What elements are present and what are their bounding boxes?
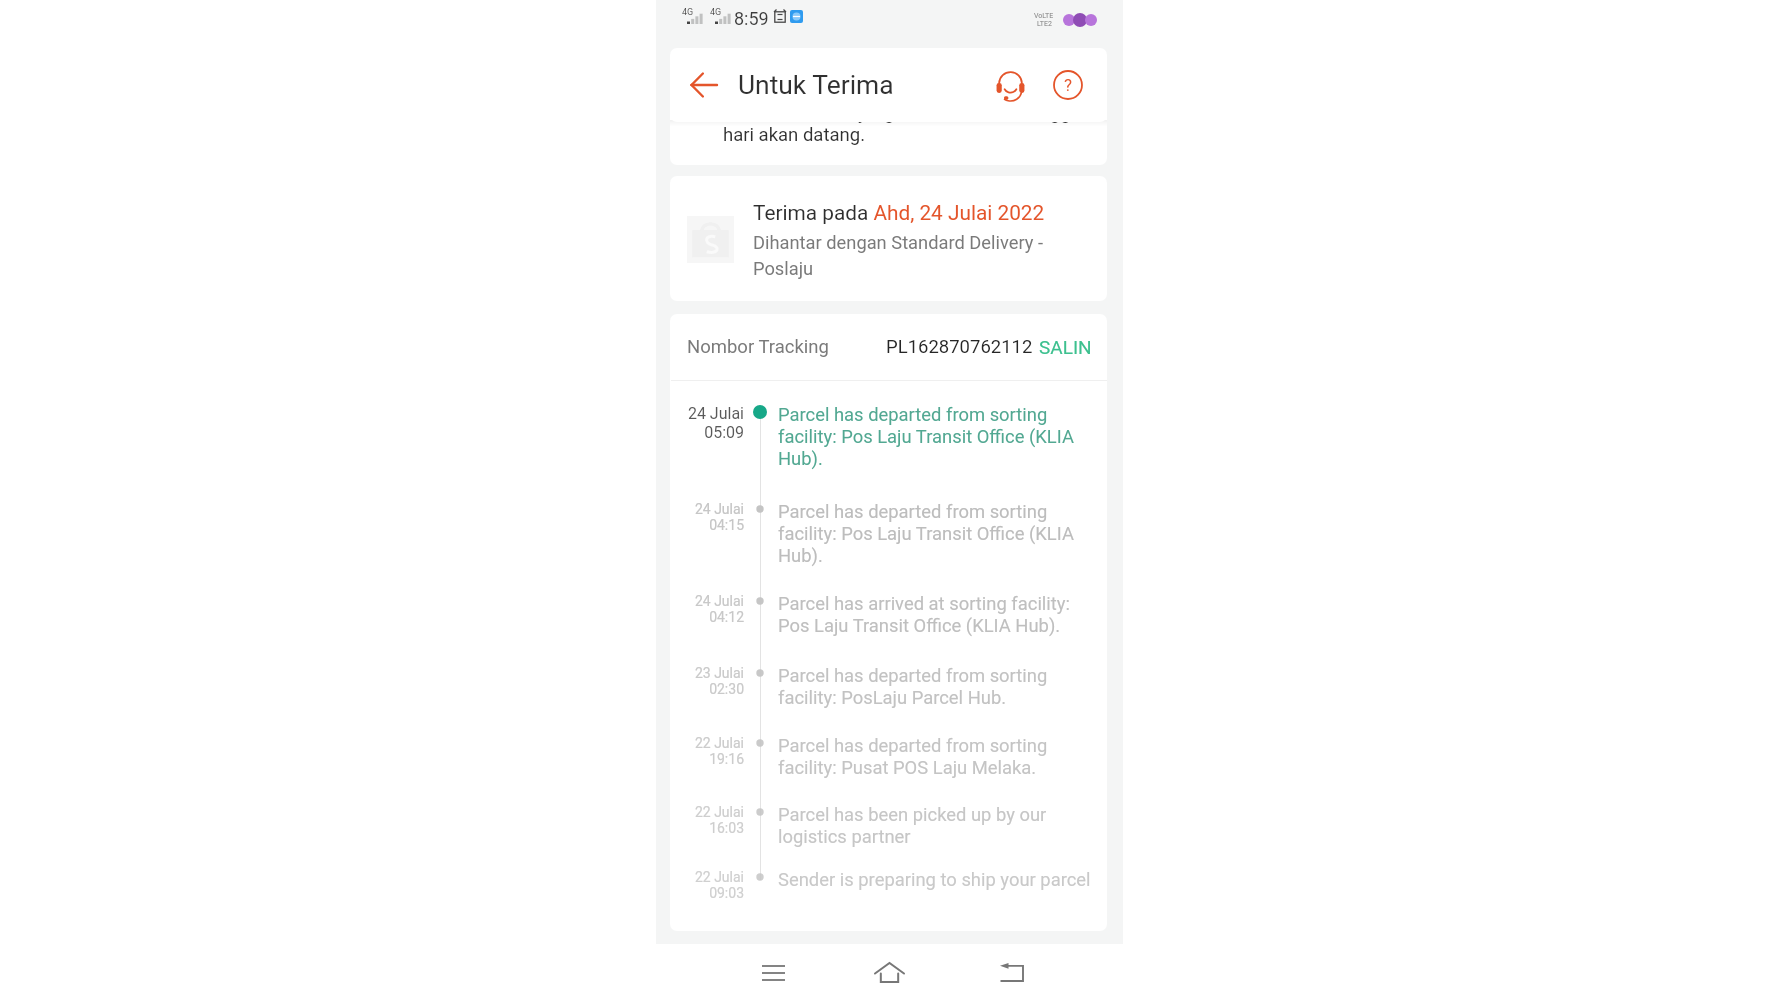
button[interactable]: Customer support chat [988, 63, 1032, 107]
staticText: 05:09 [704, 423, 744, 442]
staticText: VoLTE [1034, 12, 1054, 20]
staticText: 09:03 [709, 885, 744, 901]
staticText: 24 Julai [694, 501, 744, 517]
button[interactable]: Back [670, 48, 738, 122]
button[interactable]: Back [983, 944, 1039, 1000]
staticText: 22 Julai [694, 804, 744, 820]
staticText: 24 Julai [687, 404, 744, 423]
staticText: Parcel has arrived at sorting facility: … [778, 593, 1094, 637]
staticText: 16:03 [709, 820, 744, 836]
staticText: 22 Julai [694, 869, 744, 885]
staticText: Terima pada Ahd, 24 Julai 2022 [753, 201, 1045, 225]
staticText: Dihantar dengan Standard Delivery - Posl… [753, 232, 1053, 279]
staticText: 02:30 [709, 681, 744, 697]
staticText: Sender is preparing to ship your parcel [778, 869, 1094, 891]
button[interactable]: Home [861, 944, 917, 1000]
staticText: Untuk Terima [738, 70, 894, 101]
staticText: Parcel has been picked up by our logisti… [778, 804, 1094, 848]
staticText: hari akan datang. [723, 124, 866, 146]
staticText: Parcel has departed from sorting facilit… [778, 404, 1094, 470]
staticText: 04:15 [709, 517, 744, 533]
staticText: 23 Julai [694, 665, 744, 681]
button[interactable]: Help [1046, 63, 1090, 107]
staticText: 24 Julai [694, 593, 744, 609]
staticText: Parcel has departed from sorting facilit… [778, 665, 1094, 709]
staticText: Parcel has departed from sorting facilit… [778, 735, 1094, 779]
staticText: Parcel has departed from sorting facilit… [778, 501, 1094, 567]
staticText: PL162870762112 [886, 336, 1033, 358]
staticText: ? [1064, 75, 1073, 95]
staticText: LTE2 [1037, 20, 1052, 28]
staticText: 19:16 [709, 751, 744, 767]
button[interactable]: Recent apps [745, 945, 801, 1000]
staticText: 04:12 [709, 609, 744, 625]
staticText: 4G [710, 7, 722, 18]
staticText: Nombor Tracking [687, 336, 829, 358]
button[interactable]: Terima pada Ahd, 24 Julai 2022 [670, 176, 1107, 301]
staticText: Pesanan anda dijangka tiba dalam 2 hingg… [723, 102, 1096, 124]
staticText: 8:59 [734, 8, 769, 29]
staticText: 4G [682, 7, 694, 18]
button[interactable]: Nombor Tracking [687, 314, 1092, 380]
staticText: SALIN [1039, 336, 1092, 358]
staticText: 22 Julai [694, 735, 744, 751]
